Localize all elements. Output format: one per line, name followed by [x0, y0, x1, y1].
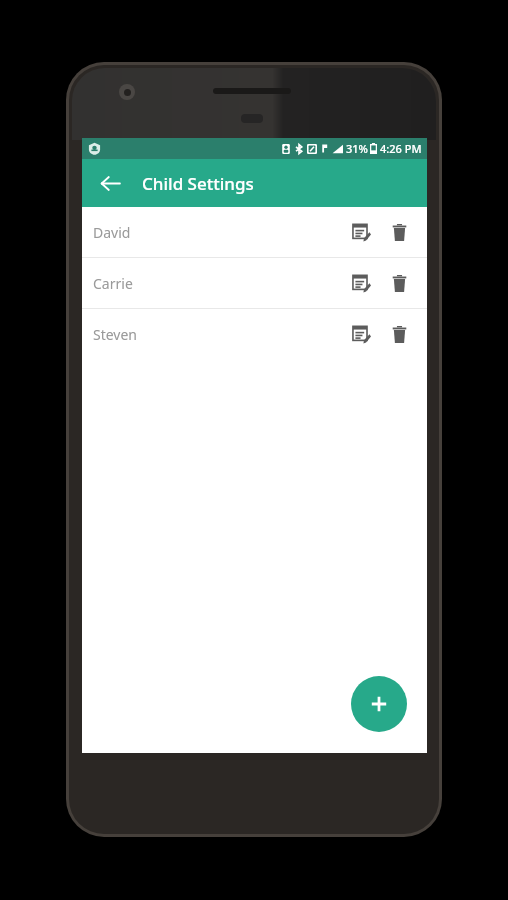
button[interactable]: Add child [351, 676, 407, 732]
button[interactable]: Delete Steven [381, 316, 417, 352]
staticText: 31% [346, 141, 368, 156]
button[interactable]: Delete David [381, 214, 417, 250]
button[interactable]: Edit David [343, 214, 379, 250]
button[interactable]: Carrie [82, 258, 427, 308]
button[interactable]: Back [90, 163, 130, 203]
staticText: 4:26 PM [380, 141, 422, 156]
button[interactable]: David [82, 207, 427, 257]
staticText: Steven [93, 325, 343, 344]
button[interactable]: Delete Carrie [381, 265, 417, 301]
staticText: Child Settings [142, 172, 254, 195]
staticText: Carrie [93, 274, 343, 293]
button[interactable]: Edit Steven [343, 316, 379, 352]
button[interactable]: Edit Carrie [343, 265, 379, 301]
staticText: David [93, 223, 343, 242]
button[interactable]: Steven [82, 309, 427, 359]
